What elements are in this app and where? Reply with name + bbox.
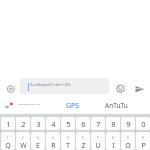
staticText: Suchbegriff oder URL [30, 82, 71, 88]
staticText: 7 [97, 136, 99, 140]
button[interactable]: 6 [76, 117, 90, 130]
button[interactable]: 6 [76, 132, 90, 150]
button[interactable]: 7 [91, 117, 105, 130]
staticText: I [112, 141, 115, 150]
staticText: P [141, 141, 146, 150]
button[interactable]: 5 [61, 132, 75, 150]
staticText: 0 [142, 136, 144, 140]
staticText: 3 [36, 119, 41, 129]
staticText: U [95, 141, 101, 150]
staticText: AnTuTu [105, 101, 128, 110]
staticText: Z [81, 141, 86, 150]
button[interactable]: 5 [61, 117, 75, 130]
staticText: 5 [67, 136, 69, 140]
button[interactable]: 0 [136, 117, 150, 130]
button[interactable]: 1 [1, 132, 15, 150]
button[interactable]: Go [131, 80, 148, 97]
staticText: 8 [112, 136, 114, 140]
button[interactable]: 2 [16, 117, 30, 130]
button[interactable]: 8 [106, 132, 120, 150]
button[interactable]: 1 [1, 117, 15, 130]
staticText: 9 [127, 136, 129, 140]
staticText: E [36, 141, 40, 150]
button[interactable]: Suchbegriff oder URL [20, 78, 109, 94]
staticText: O [125, 141, 131, 150]
staticText: 1 [6, 119, 11, 129]
staticText: 2 [21, 119, 26, 129]
staticText: 2 [22, 136, 24, 140]
button[interactable]: GPS [66, 101, 80, 111]
staticText: W [20, 141, 27, 150]
staticText: 5 [66, 119, 71, 129]
staticText: 4 [51, 119, 56, 129]
button[interactable]: 7 [91, 132, 105, 150]
staticText: 0 [141, 119, 146, 129]
button[interactable]: 2 [16, 132, 30, 150]
button[interactable]: AnTuTu [105, 101, 128, 110]
staticText: 6 [81, 119, 86, 129]
button[interactable]: 8 [106, 117, 120, 130]
button[interactable]: 9 [121, 117, 135, 130]
button[interactable]: Emoji [112, 80, 129, 97]
staticText: 4 [52, 136, 54, 140]
button[interactable]: 3 [31, 132, 45, 150]
staticText: Suchbegriff oder URL [18, 103, 40, 106]
staticText: 6 [82, 136, 84, 140]
staticText: GPS [66, 101, 80, 111]
button[interactable]: 9 [121, 132, 135, 150]
staticText: 1 [7, 136, 9, 140]
button[interactable]: 3 [31, 117, 45, 130]
staticText: 9 [126, 119, 131, 129]
button[interactable]: 4 [46, 132, 60, 150]
staticText: R [51, 141, 56, 150]
staticText: Q [5, 141, 11, 150]
staticText: 8 [111, 119, 116, 129]
button[interactable]: 4 [46, 117, 60, 130]
staticText: T [66, 141, 70, 150]
staticText: 3 [37, 136, 39, 140]
button[interactable]: New tab [3, 81, 19, 97]
button[interactable]: 0 [136, 132, 150, 150]
staticText: 7 [96, 119, 101, 129]
